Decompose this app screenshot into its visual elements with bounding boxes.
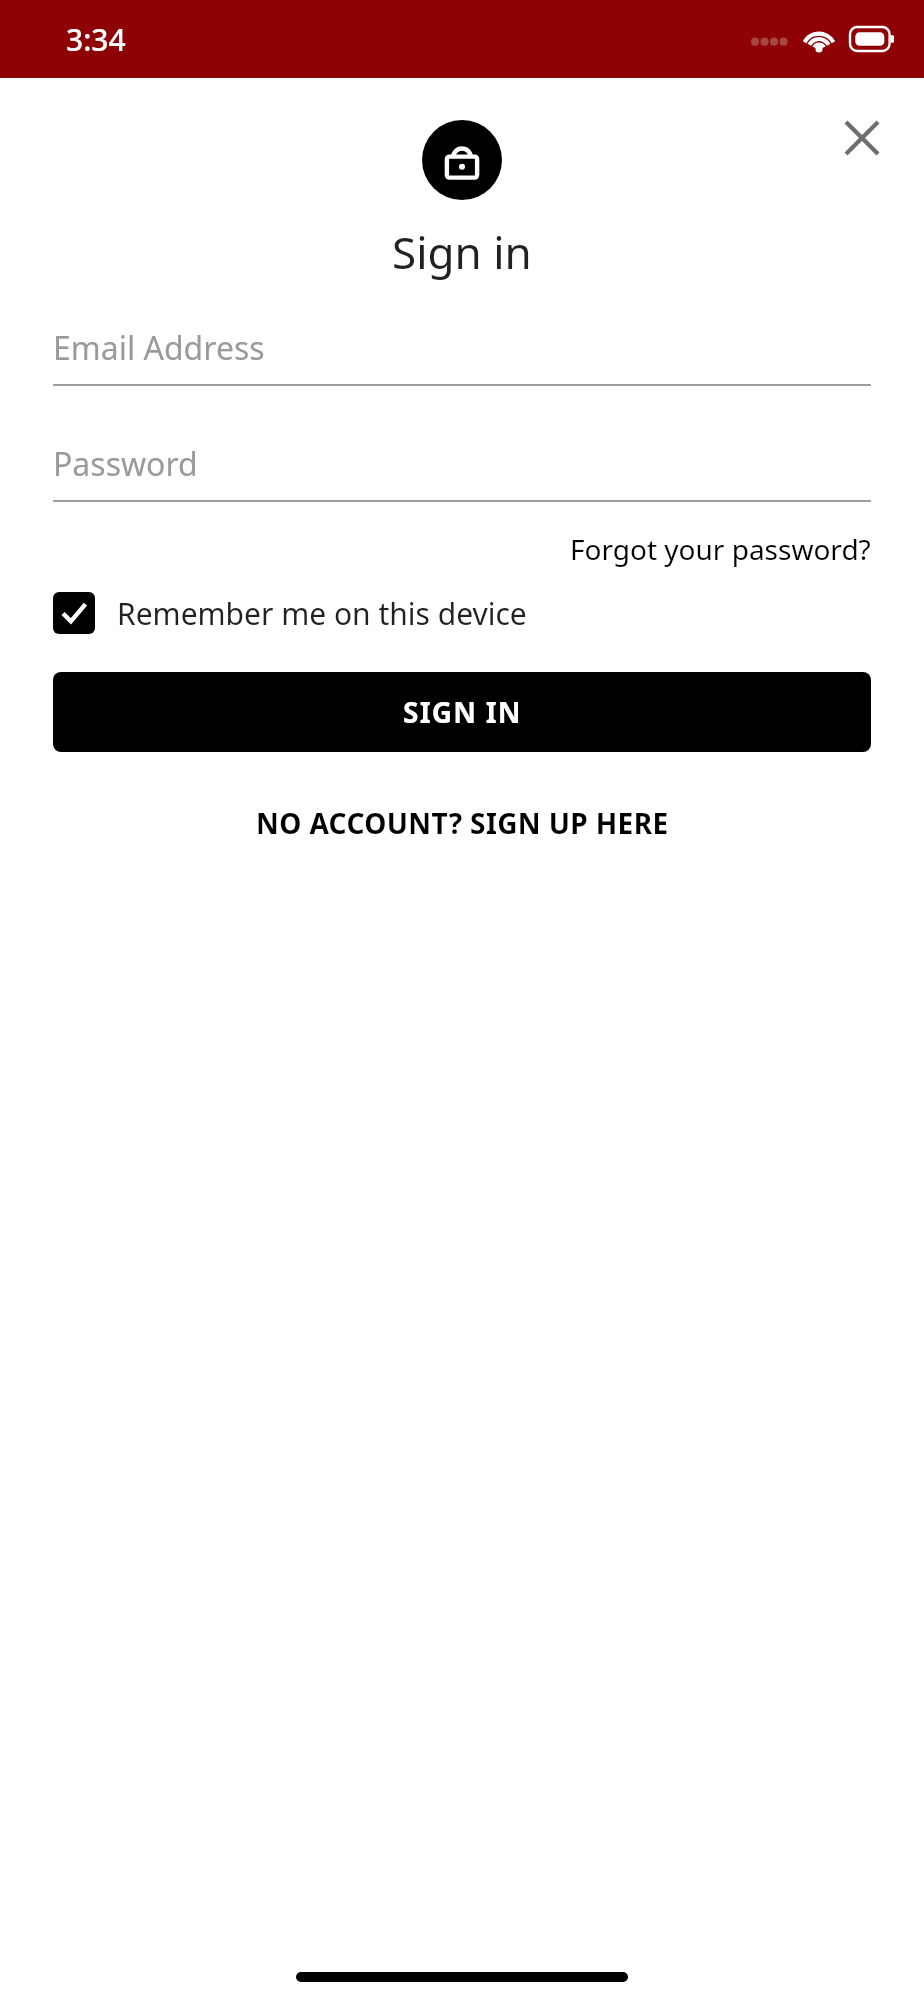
staticText: SIGN IN <box>403 693 522 731</box>
button[interactable]: NO ACCOUNT? SIGN UP HERE <box>244 798 681 848</box>
button[interactable]: Remember me on this device <box>53 592 871 634</box>
staticText: 3:34 <box>66 19 126 60</box>
staticText: Password <box>53 442 198 486</box>
button[interactable]: Close <box>836 112 888 164</box>
button[interactable]: Password <box>53 442 871 502</box>
staticText: Forgot your password? <box>570 530 871 568</box>
button[interactable]: Email Address <box>53 326 871 386</box>
staticText: Remember me on this device <box>117 593 527 634</box>
button[interactable]: SIGN IN <box>53 672 871 752</box>
button[interactable]: Forgot your password? <box>570 530 871 568</box>
staticText: Sign in <box>392 222 532 282</box>
staticText: Email Address <box>53 326 265 370</box>
staticText: NO ACCOUNT? SIGN UP HERE <box>256 804 669 842</box>
